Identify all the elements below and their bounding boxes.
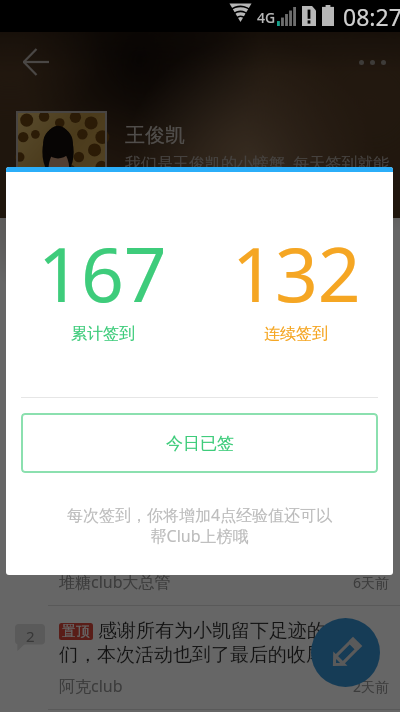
staticText: 每次签到，你将增加4点经验值还可以帮Club上榜哦	[64, 504, 335, 547]
staticText: 我们是王俊凯的小螃蟹 每天签到就能	[125, 152, 390, 174]
staticText: 王俊凯	[125, 123, 185, 148]
staticText: 的家 欢迎大家常回家看看	[59, 539, 273, 565]
button[interactable]: Compose new post	[311, 618, 380, 687]
staticText: 6天前	[353, 573, 390, 592]
staticText: 置顶	[62, 623, 90, 640]
staticText: 感谢所有为小凯留下足迹的小	[98, 619, 345, 643]
staticText: 连续签到	[264, 324, 328, 344]
staticText: 阿克club	[59, 675, 123, 697]
staticText: 2天前	[353, 677, 390, 696]
button[interactable]: More options	[348, 38, 396, 86]
staticText: 2	[26, 626, 35, 646]
button[interactable]: 今日已签	[21, 413, 378, 473]
button[interactable]: 2	[0, 502, 400, 606]
staticText: 08:27	[343, 1, 400, 32]
staticText: 堆糖club大总管	[59, 571, 171, 593]
staticText: 累计签到	[71, 324, 135, 344]
staticText: 感谢所有小凯的粉丝 这里是大家	[59, 515, 330, 541]
button[interactable]: 2	[0, 606, 400, 710]
staticText: 167	[38, 222, 167, 324]
staticText: 4G	[257, 8, 276, 27]
staticText: 今日已签	[166, 433, 234, 454]
staticText: 们，本次活动也到了最后的收尾关	[59, 643, 344, 667]
button[interactable]: Back	[12, 38, 60, 86]
staticText: 132	[232, 222, 361, 324]
